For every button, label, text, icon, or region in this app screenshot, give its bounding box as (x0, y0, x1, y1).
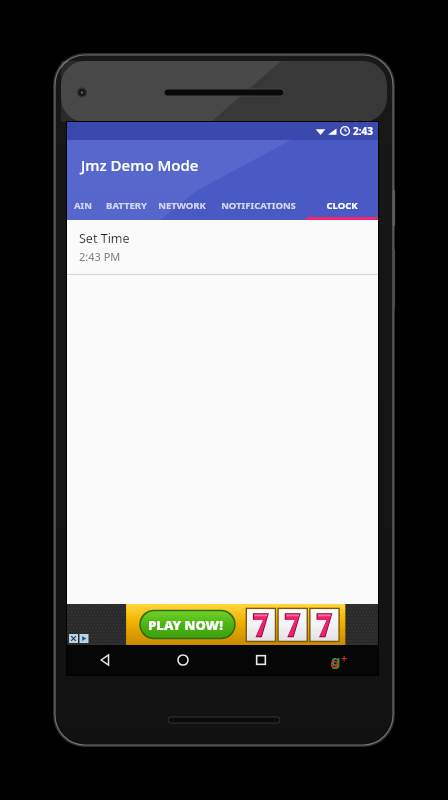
button[interactable]: Home (144, 645, 222, 675)
staticText: Jmz Demo Mode (81, 155, 199, 175)
staticText: NETWORK (158, 199, 206, 212)
staticText: CLOCK (326, 199, 358, 212)
staticText: 2:43 (353, 124, 373, 138)
button[interactable]: CLOCK (306, 190, 378, 220)
staticText: BATTERY (106, 199, 147, 212)
staticText: Set Time (79, 230, 130, 247)
button[interactable]: Google Plus (300, 645, 378, 675)
button[interactable]: Jmz Demo Mode (81, 155, 199, 175)
staticText: g (331, 650, 341, 670)
button[interactable]: Advertisement: Play Now (67, 604, 378, 645)
staticText: NOTIFICATIONS (221, 199, 296, 212)
staticText: 2:43 PM (79, 249, 121, 264)
button[interactable]: Set Time (67, 220, 378, 274)
button[interactable]: Back (67, 645, 144, 675)
staticText: + (341, 650, 348, 665)
button[interactable]: BATTERY (99, 190, 153, 220)
button[interactable]: NETWORK (153, 190, 211, 220)
button[interactable]: Recent apps (222, 645, 300, 675)
staticText: AIN (74, 199, 92, 212)
button[interactable]: NOTIFICATIONS (211, 190, 306, 220)
staticText: PLAY NOW! (148, 616, 223, 634)
button[interactable]: AIN (67, 190, 99, 220)
